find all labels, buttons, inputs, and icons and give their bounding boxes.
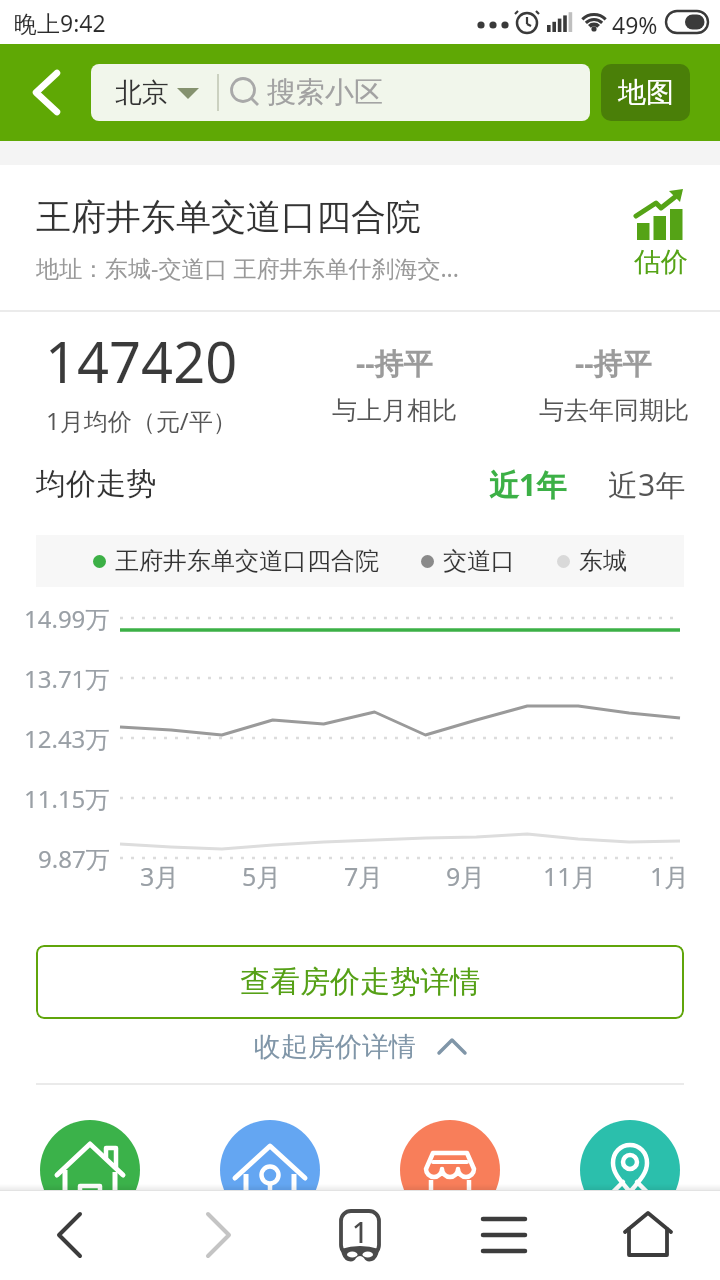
button[interactable] bbox=[400, 1120, 500, 1220]
staticText: 东城 bbox=[579, 546, 627, 576]
button[interactable] bbox=[576, 1190, 720, 1280]
staticText: 1 bbox=[352, 1213, 369, 1251]
staticText: 王府井东单交道口四合院 bbox=[36, 195, 421, 239]
staticText: 3月 bbox=[140, 859, 180, 893]
button[interactable]: 北京 bbox=[91, 64, 590, 121]
staticText: 1月均价（元/平） bbox=[46, 404, 237, 437]
button[interactable]: 收起房价详情 bbox=[0, 1029, 720, 1065]
staticText: 与上月相比 bbox=[332, 395, 457, 426]
staticText: 王府井东单交道口四合院 bbox=[115, 546, 379, 576]
staticText: 13.71万 bbox=[24, 662, 110, 694]
staticText: 近1年 bbox=[489, 464, 567, 505]
button[interactable] bbox=[144, 1190, 288, 1280]
staticText: 11.15万 bbox=[24, 782, 110, 814]
staticText: 与去年同期比 bbox=[539, 395, 689, 426]
staticText: 估价 bbox=[634, 245, 688, 279]
button[interactable]: 查看房价走势详情 bbox=[36, 945, 684, 1019]
button[interactable] bbox=[40, 1120, 140, 1220]
staticText: 近3年 bbox=[608, 464, 686, 505]
staticText: 1月 bbox=[650, 859, 690, 893]
staticText: 搜索小区 bbox=[267, 74, 383, 111]
staticText: --持平 bbox=[356, 343, 433, 383]
staticText: 均价走势 bbox=[36, 465, 156, 503]
button[interactable] bbox=[580, 1120, 680, 1220]
button[interactable]: 近1年 bbox=[489, 464, 567, 505]
staticText: 14.99万 bbox=[24, 602, 110, 634]
button[interactable]: 近3年 bbox=[608, 464, 686, 505]
button[interactable]: 估价 bbox=[634, 189, 688, 279]
button[interactable]: 1 bbox=[288, 1190, 432, 1280]
button[interactable] bbox=[220, 1120, 320, 1220]
staticText: 147420 bbox=[45, 323, 238, 399]
button[interactable]: 地图 bbox=[601, 64, 690, 121]
staticText: 12.43万 bbox=[24, 722, 110, 754]
staticText: 9.87万 bbox=[38, 842, 110, 874]
staticText: --持平 bbox=[575, 343, 652, 383]
button[interactable] bbox=[0, 44, 91, 141]
staticText: 地图 bbox=[618, 75, 674, 110]
button[interactable] bbox=[0, 1190, 144, 1280]
staticText: 晚上9:42 bbox=[14, 7, 106, 38]
staticText: 北京 bbox=[115, 76, 169, 110]
staticText: 地址：东城-交道口 王府井东单什刹海交... bbox=[36, 252, 459, 283]
staticText: 收起房价详情 bbox=[254, 1030, 416, 1064]
staticText: 查看房价走势详情 bbox=[240, 963, 480, 1001]
staticText: 5月 bbox=[242, 859, 282, 893]
button[interactable] bbox=[432, 1190, 576, 1280]
staticText: 11月 bbox=[543, 859, 597, 893]
staticText: 交道口 bbox=[443, 546, 515, 576]
staticText: 49% bbox=[612, 9, 658, 40]
staticText: 9月 bbox=[446, 859, 486, 893]
staticText: 7月 bbox=[344, 859, 384, 893]
